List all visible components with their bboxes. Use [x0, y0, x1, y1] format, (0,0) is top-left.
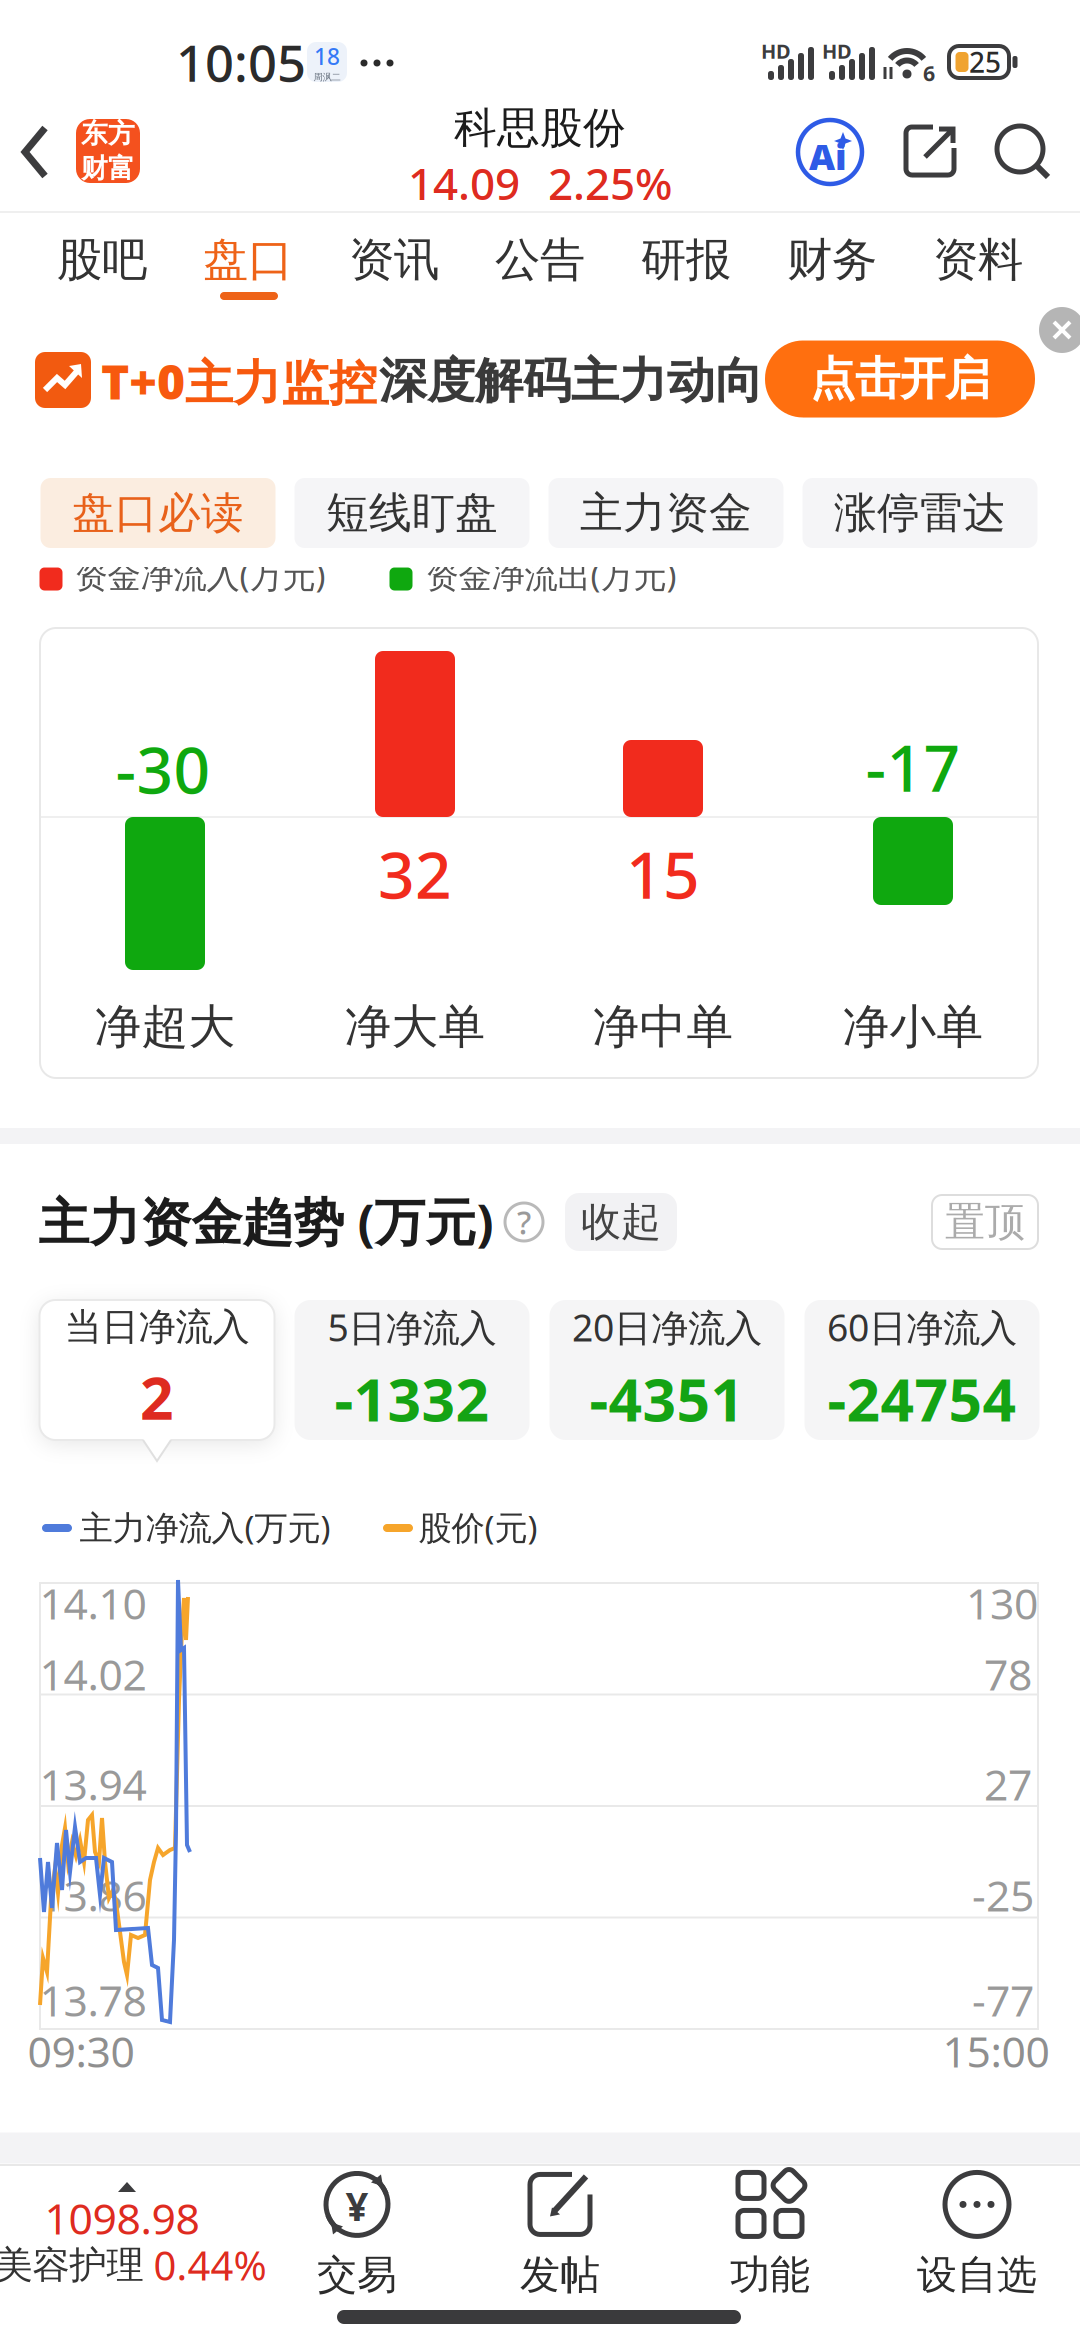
staticText: 13.86	[39, 1867, 146, 1923]
staticText: 深度解码主力动向	[379, 351, 763, 410]
button[interactable]: 股吧	[29, 212, 175, 308]
button[interactable]: 当日净流入	[39, 1300, 274, 1440]
button[interactable]: 财务	[759, 212, 905, 308]
staticText: -24754	[827, 1360, 1016, 1438]
button[interactable]: 主力资金	[548, 478, 783, 548]
staticText: 资金净流入(万元)	[74, 553, 325, 597]
staticText: 美容护理	[0, 2242, 143, 2288]
button[interactable]: ¥	[267, 2169, 447, 2299]
staticText: Ai	[809, 132, 847, 180]
button[interactable]: 60日净流入	[804, 1300, 1039, 1440]
button[interactable]: Ai助手	[796, 118, 864, 186]
button[interactable]: 1098.98	[0, 2170, 260, 2290]
staticText: 主力资金趋势 (万元)	[38, 1187, 493, 1255]
staticText: 净超大	[94, 998, 235, 1056]
staticText: 20日净流入	[572, 1302, 762, 1352]
button[interactable]: 设自选	[887, 2169, 1067, 2299]
button[interactable]: 资讯	[321, 212, 467, 308]
staticText: 功能	[730, 2250, 810, 2299]
staticText: 点击开启	[810, 351, 990, 407]
button[interactable]: 公告	[467, 212, 613, 308]
staticText: 当日净流入	[64, 1304, 249, 1350]
button[interactable]: 置顶	[932, 1195, 1038, 1249]
staticText: 15:00	[942, 2023, 1049, 2079]
staticText: 27	[984, 1756, 1032, 1812]
button[interactable]: 资料	[905, 212, 1051, 308]
staticText: T+0主力监控	[101, 349, 377, 413]
staticText: 14.10	[39, 1575, 146, 1631]
staticText: 60日净流入	[827, 1302, 1017, 1352]
staticText: 东方	[81, 117, 135, 150]
staticText: 资讯	[349, 232, 439, 288]
staticText: 公告	[495, 232, 585, 288]
staticText: 主力资金	[580, 487, 752, 539]
button[interactable]: 5日净流入	[294, 1300, 529, 1440]
button[interactable]: 收起	[565, 1193, 677, 1251]
button[interactable]: 涨停雷达	[802, 478, 1037, 548]
staticText: 18	[314, 41, 340, 71]
staticText: 资料	[933, 232, 1023, 288]
staticText: 涨停雷达	[834, 487, 1006, 539]
button[interactable]: Share	[903, 124, 957, 178]
button[interactable]: 盘口	[175, 212, 321, 308]
staticText: 6	[923, 59, 935, 87]
staticText: 1098.98	[44, 2190, 199, 2246]
button[interactable]: 关闭	[1039, 307, 1080, 353]
button[interactable]: Back	[21, 124, 51, 180]
staticText: 设自选	[917, 2250, 1037, 2299]
button[interactable]: 帮助	[505, 1201, 543, 1243]
staticText: 10:05	[176, 28, 306, 96]
staticText: -25	[972, 1867, 1034, 1923]
staticText: 2	[140, 1358, 174, 1436]
button[interactable]: T+0主力监控	[0, 310, 1080, 444]
staticText: 130	[966, 1575, 1038, 1631]
button[interactable]: 20日净流入	[549, 1300, 784, 1440]
staticText: 收起	[581, 1197, 661, 1246]
staticText: ¥	[345, 2179, 368, 2232]
staticText: 32	[378, 831, 452, 916]
staticText: -4351	[589, 1360, 744, 1438]
staticText: -17	[865, 724, 960, 809]
staticText: 净大单	[344, 998, 485, 1056]
staticText: 盘口	[203, 232, 293, 288]
staticText: 科思股份	[454, 102, 626, 154]
staticText: 盘口必读	[72, 487, 244, 539]
staticText: 置顶	[945, 1197, 1025, 1246]
staticText: 5日净流入	[327, 1302, 496, 1352]
staticText: 财富	[81, 152, 135, 185]
staticText: 研报	[641, 232, 731, 288]
staticText: -30	[115, 726, 210, 811]
button[interactable]: 盘口必读	[40, 478, 275, 548]
button[interactable]: 短线盯盘	[294, 478, 529, 548]
staticText: 短线盯盘	[326, 487, 498, 539]
staticText: 13.78	[39, 1972, 146, 2028]
staticText: HD	[822, 38, 852, 64]
button[interactable]: Search	[996, 125, 1050, 179]
button[interactable]: 点击开启	[765, 340, 1035, 417]
button[interactable]: 发帖	[470, 2169, 650, 2299]
staticText: 发帖	[520, 2250, 600, 2299]
button[interactable]: 研报	[613, 212, 759, 308]
staticText: 0.44%	[153, 2238, 266, 2291]
staticText: 15	[626, 831, 700, 916]
staticText: 股吧	[57, 232, 147, 288]
staticText: 14.02	[39, 1646, 146, 1702]
staticText: -77	[972, 1972, 1034, 2028]
staticText: 14.09	[408, 154, 520, 212]
button[interactable]: 功能	[680, 2169, 860, 2299]
staticText: 财务	[787, 232, 877, 288]
staticText: 股价(元)	[418, 1505, 537, 1549]
staticText: 周沨二	[313, 71, 340, 83]
button[interactable]: 东方财富	[76, 117, 140, 185]
staticText: 净中单	[592, 998, 733, 1056]
staticText: 交易	[317, 2250, 397, 2299]
staticText: HD	[761, 38, 791, 64]
staticText: 主力净流入(万元)	[79, 1505, 330, 1549]
staticText: 2.25%	[548, 154, 672, 212]
staticText: -1332	[334, 1360, 489, 1438]
staticText: 13.94	[39, 1756, 146, 1812]
staticText: 净小单	[842, 998, 983, 1056]
staticText: 资金净流出(万元)	[425, 553, 676, 597]
staticText: ?	[517, 1201, 531, 1243]
staticText: 25	[969, 43, 1001, 81]
